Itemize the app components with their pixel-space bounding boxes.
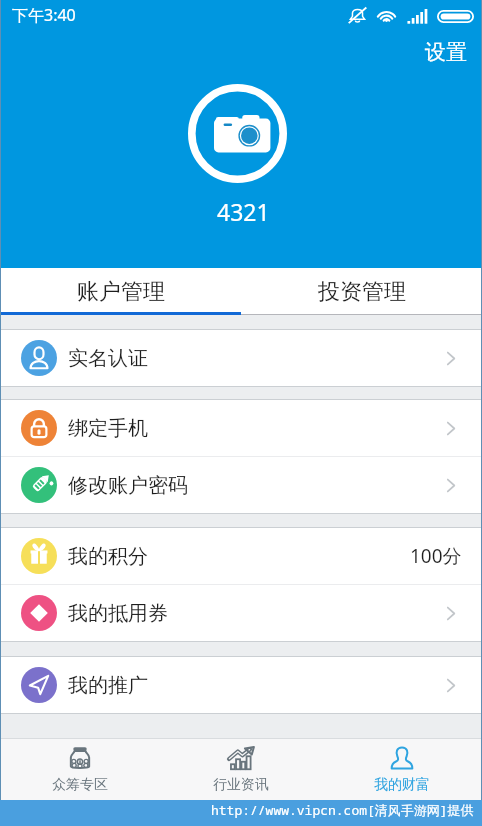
staticText: 设置 <box>425 39 467 65</box>
button[interactable]: 设置 <box>421 36 471 68</box>
staticText: 我的抵用券 <box>68 601 168 626</box>
button[interactable]: 绑定手机 <box>0 400 482 456</box>
button[interactable]: 众筹专区 <box>0 739 160 800</box>
button[interactable]: 我的抵用券 <box>0 585 482 641</box>
button[interactable]: 我的积分 <box>0 528 482 584</box>
staticText: 修改账户密码 <box>68 473 188 498</box>
button[interactable]: 我的推广 <box>0 657 482 713</box>
button[interactable]: 账户管理 <box>0 268 241 315</box>
staticText: 绑定手机 <box>68 416 148 441</box>
button[interactable]: Change profile photo <box>188 84 287 183</box>
staticText: 投资管理 <box>318 278 406 306</box>
button[interactable]: 修改账户密码 <box>0 457 482 513</box>
button[interactable]: 行业资讯 <box>160 739 321 800</box>
staticText: 下午3:40 <box>12 4 76 26</box>
staticText: 实名认证 <box>68 346 148 371</box>
button[interactable]: 投资管理 <box>241 268 482 315</box>
button[interactable]: 我的财富 <box>321 739 482 800</box>
staticText: 我的积分 <box>68 544 148 569</box>
staticText: http://www.vipcn.com[清风手游网]提供 <box>211 801 474 819</box>
staticText: 我的推广 <box>68 673 148 698</box>
staticText: 100分 <box>410 543 462 569</box>
button[interactable]: 实名认证 <box>0 330 482 386</box>
staticText: 行业资讯 <box>213 776 269 794</box>
staticText: 众筹专区 <box>52 776 108 794</box>
staticText: 账户管理 <box>77 278 165 306</box>
staticText: 4321 <box>217 196 270 227</box>
staticText: 我的财富 <box>374 776 430 794</box>
